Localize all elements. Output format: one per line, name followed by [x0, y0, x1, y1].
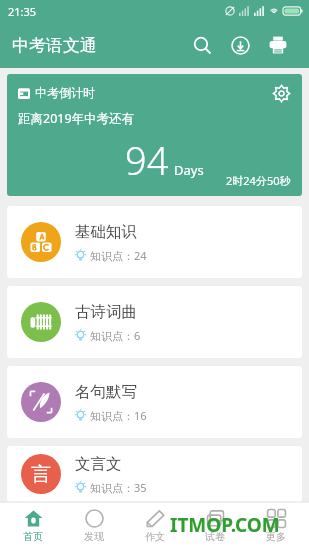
button[interactable]: 更多 [248, 502, 304, 550]
staticText: 更多 [266, 530, 286, 543]
button[interactable]: Search [183, 26, 221, 64]
staticText: 21:35 [8, 4, 37, 19]
staticText: ITMOP.COM [170, 512, 280, 538]
button[interactable]: 名句默写 [7, 366, 302, 438]
staticText: 古诗词曲 [75, 302, 137, 322]
staticText: 知识点：24 [90, 248, 147, 263]
button[interactable]: 首页 [5, 502, 61, 550]
staticText: 发现 [84, 530, 104, 543]
staticText: 文言文 [75, 454, 122, 474]
staticText: 距离2019年中考还有 [18, 110, 135, 127]
button[interactable]: 试卷 [187, 502, 243, 550]
staticText: 首页 [23, 530, 43, 543]
staticText: 知识点：35 [90, 480, 147, 495]
staticText: 作文 [145, 530, 165, 543]
staticText: 言 [31, 462, 51, 487]
staticText: 知识点：6 [90, 328, 141, 343]
staticText: 试卷 [205, 530, 225, 543]
button[interactable]: 言 [7, 446, 302, 502]
staticText: 基础知识 [75, 222, 137, 242]
staticText: 名句默写 [75, 382, 137, 402]
button[interactable]: Download [221, 26, 259, 64]
staticText: 中考语文通 [12, 35, 97, 56]
button[interactable]: 中考倒计时 [7, 74, 302, 196]
staticText: 中考倒计时 [35, 85, 95, 100]
staticText: 2时24分50秒 [226, 173, 291, 188]
staticText: 94 [125, 134, 169, 186]
button[interactable]: 古诗词曲 [7, 286, 302, 358]
button[interactable]: Print [259, 26, 297, 64]
button[interactable]: 基础知识 [7, 206, 302, 278]
button[interactable]: Settings [266, 78, 296, 108]
staticText: Days [174, 161, 204, 179]
button[interactable]: 作文 [127, 502, 183, 550]
staticText: 知识点：16 [90, 408, 147, 423]
button[interactable]: 发现 [66, 502, 122, 550]
